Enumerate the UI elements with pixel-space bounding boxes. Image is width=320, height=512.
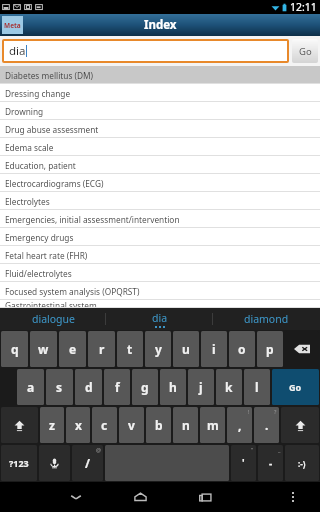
staticText: z <box>49 417 55 433</box>
button[interactable]: z <box>40 407 64 443</box>
button[interactable]: Emoji <box>285 445 319 481</box>
staticText: Dressing change <box>5 88 71 99</box>
button[interactable]: Focused system analysis (OPQRST) <box>0 282 320 300</box>
button[interactable]: Fluid/electrolytes <box>0 264 320 282</box>
staticText: m <box>207 417 219 433</box>
staticText: r <box>99 341 105 357</box>
button[interactable]: p <box>257 331 283 367</box>
button[interactable]: y <box>145 331 171 367</box>
button[interactable]: / <box>72 445 103 481</box>
button[interactable]: App home <box>2 16 23 34</box>
staticText: Gastrointestinal system <box>5 300 97 308</box>
button[interactable]: ?123 <box>1 445 37 481</box>
button[interactable]: dia <box>106 308 213 330</box>
button[interactable]: Home <box>123 482 158 512</box>
button[interactable]: Electrolytes <box>0 192 320 210</box>
staticText: ? <box>274 408 277 415</box>
button[interactable]: Go <box>272 369 319 405</box>
button[interactable]: Education, patient <box>0 156 320 174</box>
button[interactable]: t <box>117 331 143 367</box>
staticText: diamond <box>244 312 289 326</box>
staticText: Index <box>144 17 177 33</box>
staticText: :-) <box>298 458 306 469</box>
button[interactable]: , <box>227 407 252 443</box>
button[interactable]: Edema scale <box>0 138 320 156</box>
button[interactable]: c <box>92 407 117 443</box>
staticText: ' <box>242 456 245 470</box>
staticText: Electrocardiograms (ECG) <box>5 178 104 189</box>
button[interactable]: - <box>258 445 283 481</box>
button[interactable]: u <box>173 331 199 367</box>
staticText: dia <box>152 311 168 325</box>
staticText: dialogue <box>32 312 75 326</box>
button[interactable]: Back <box>58 482 93 512</box>
button[interactable]: Go <box>292 39 318 63</box>
staticText: f <box>115 379 120 395</box>
button[interactable]: v <box>119 407 144 443</box>
button[interactable]: n <box>173 407 198 443</box>
button[interactable]: o <box>229 331 255 367</box>
button[interactable]: b <box>146 407 171 443</box>
staticText: w <box>38 341 49 357</box>
button[interactable]: Drowning <box>0 102 320 120</box>
button[interactable]: diamond <box>213 308 320 330</box>
staticText: Focused system analysis (OPQRST) <box>5 286 140 297</box>
button[interactable]: j <box>188 369 214 405</box>
button[interactable]: Emergencies, initial assessment/interven… <box>0 210 320 228</box>
staticText: u <box>182 341 190 357</box>
button[interactable]: Electrocardiograms (ECG) <box>0 174 320 192</box>
button[interactable]: dia <box>4 41 287 61</box>
staticText: " <box>251 446 254 453</box>
button[interactable]: . <box>254 407 279 443</box>
staticText: Drowning <box>5 106 44 117</box>
button[interactable]: h <box>160 369 186 405</box>
staticText: Fetal heart rate (FHR) <box>5 250 88 261</box>
staticText: Electrolytes <box>5 196 50 207</box>
staticText: a <box>27 379 35 395</box>
staticText: e <box>69 341 77 357</box>
button[interactable]: m <box>200 407 225 443</box>
button[interactable]: dialogue <box>0 308 106 330</box>
button[interactable]: i <box>201 331 227 367</box>
button[interactable]: k <box>216 369 242 405</box>
button[interactable]: e <box>59 331 86 367</box>
button[interactable]: Diabetes mellitus (DM) <box>0 66 320 84</box>
button[interactable]: x <box>66 407 90 443</box>
staticText: o <box>238 341 246 357</box>
staticText: Education, patient <box>5 160 76 171</box>
button[interactable]: g <box>132 369 158 405</box>
staticText: Emergencies, initial assessment/interven… <box>5 214 180 225</box>
button[interactable]: Gastrointestinal system <box>0 300 320 308</box>
staticText: d <box>85 379 93 395</box>
button[interactable]: Drug abuse assessment <box>0 120 320 138</box>
button[interactable]: q <box>1 331 28 367</box>
button[interactable]: s <box>46 369 73 405</box>
button[interactable]: Emergency drugs <box>0 228 320 246</box>
button[interactable]: ' <box>231 445 256 481</box>
staticText: 12:11 <box>290 0 317 14</box>
button[interactable]: d <box>75 369 102 405</box>
staticText: Diabetes mellitus (DM) <box>5 70 94 81</box>
staticText: l <box>255 379 259 395</box>
button[interactable]: r <box>88 331 115 367</box>
button[interactable]: a <box>17 369 44 405</box>
button[interactable]: Shift <box>1 407 38 443</box>
staticText: q <box>11 341 19 357</box>
button[interactable]: Voice input <box>39 445 70 481</box>
button[interactable]: Dressing change <box>0 84 320 102</box>
button[interactable]: Recent apps <box>188 482 223 512</box>
staticText: y <box>155 341 162 357</box>
staticText: j <box>199 379 203 395</box>
button[interactable]: Delete <box>285 331 319 367</box>
staticText: Meta <box>4 21 21 30</box>
button[interactable]: l <box>244 369 270 405</box>
button[interactable]: Fetal heart rate (FHR) <box>0 246 320 264</box>
button[interactable]: More options <box>275 482 310 512</box>
staticText: Fluid/electrolytes <box>5 268 72 279</box>
button[interactable]: w <box>30 331 57 367</box>
button[interactable]: f <box>104 369 130 405</box>
button[interactable]: Shift <box>281 407 319 443</box>
staticText: x <box>75 417 82 433</box>
staticText: k <box>225 379 233 395</box>
